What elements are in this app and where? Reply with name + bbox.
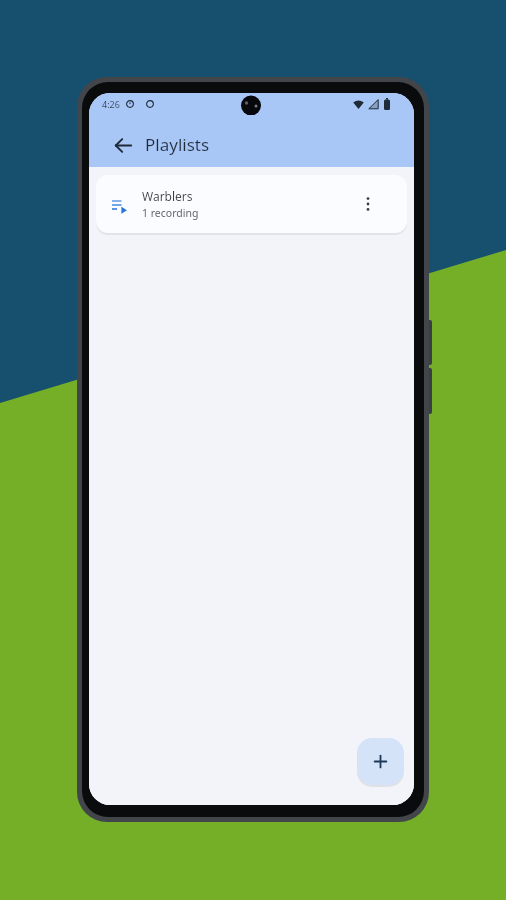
staticText: 4:26 [102,98,120,110]
button[interactable]: Warblers [96,175,407,233]
staticText: 1 recording [142,206,199,220]
button[interactable] [357,738,404,785]
staticText: Warblers [142,188,193,204]
button[interactable] [111,133,135,157]
staticText: Playlists [145,133,210,156]
button[interactable] [356,192,380,216]
